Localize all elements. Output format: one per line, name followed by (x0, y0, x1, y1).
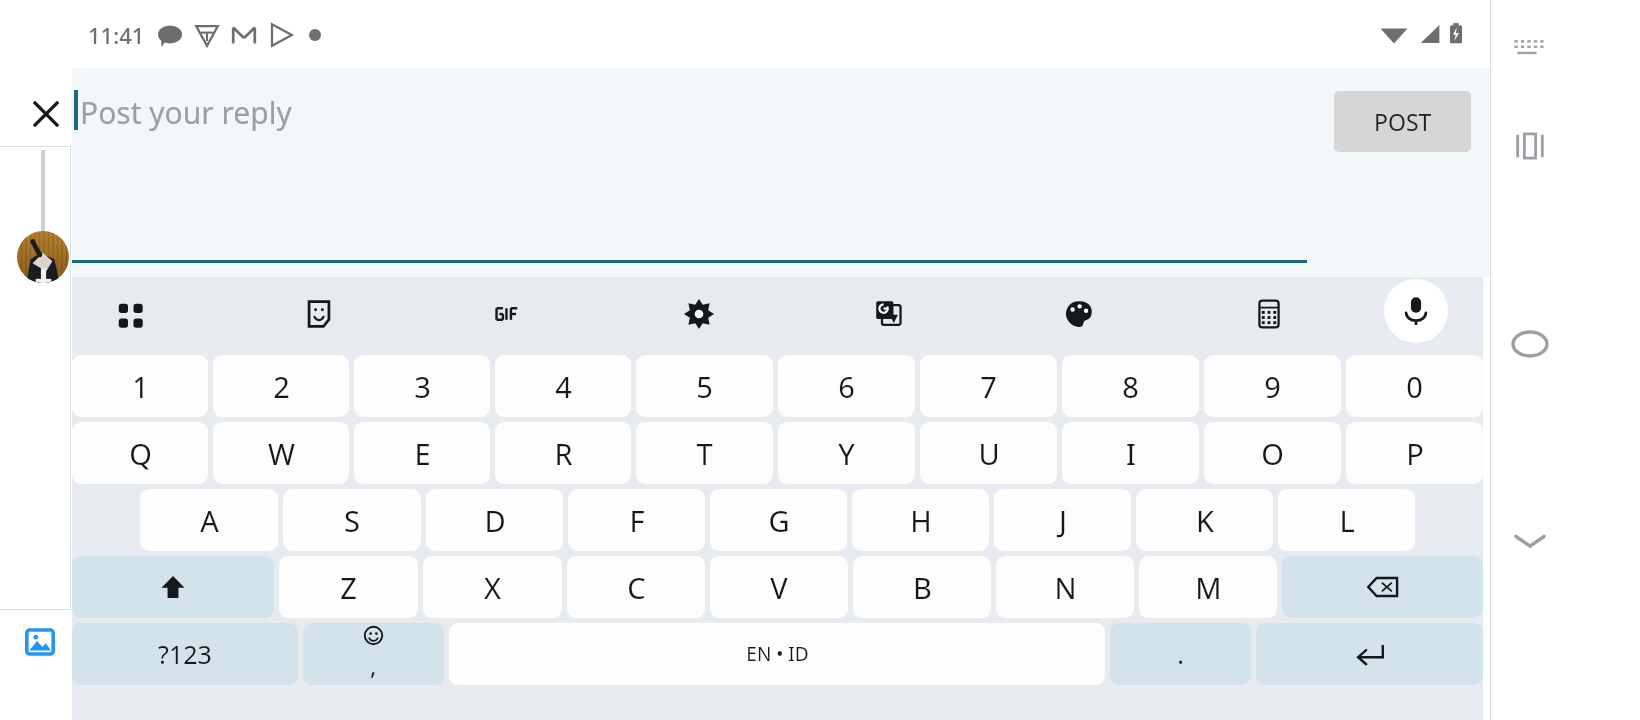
staticText: O (1261, 434, 1284, 473)
button[interactable]: Add image (16, 618, 64, 666)
button[interactable]: N (996, 556, 1134, 618)
staticText: J (1059, 501, 1067, 540)
button[interactable]: 0 (1346, 355, 1483, 417)
staticText: EN • ID (746, 641, 809, 667)
button[interactable]: Themes (1051, 286, 1107, 342)
button[interactable]: 9 (1204, 355, 1341, 417)
button[interactable]: F (568, 489, 705, 551)
button[interactable]: G (710, 489, 847, 551)
button[interactable]: W (213, 422, 349, 484)
button[interactable]: Clipboard (101, 286, 157, 342)
staticText: R (554, 434, 573, 473)
staticText: C (627, 568, 646, 607)
button[interactable]: E (354, 422, 490, 484)
button[interactable]: I (1062, 422, 1199, 484)
staticText: V (770, 568, 788, 607)
button[interactable]: . (1110, 623, 1251, 685)
staticText: 6 (838, 367, 855, 406)
staticText: Y (838, 434, 855, 473)
button[interactable]: R (495, 422, 631, 484)
button[interactable]: EN • ID (449, 623, 1105, 685)
button[interactable]: Y (778, 422, 915, 484)
staticText: H (910, 501, 932, 540)
button[interactable]: C (567, 556, 705, 618)
button[interactable]: M (1139, 556, 1277, 618)
button[interactable]: Enter (1256, 623, 1483, 685)
button[interactable]: O (1204, 422, 1341, 484)
staticText: Z (340, 568, 357, 607)
staticText: X (484, 568, 501, 607)
button[interactable]: POST (1334, 91, 1471, 152)
staticText: 4 (555, 367, 572, 406)
button[interactable]: 3 (354, 355, 490, 417)
button[interactable]: H (852, 489, 989, 551)
button[interactable]: Q (72, 422, 208, 484)
staticText: 9 (1264, 367, 1281, 406)
button[interactable]: A (140, 489, 278, 551)
staticText: B (913, 568, 932, 607)
staticText: , (370, 649, 377, 682)
button[interactable]: Number pad (1241, 286, 1297, 342)
staticText: T (696, 434, 713, 473)
button[interactable]: GIF (481, 286, 537, 342)
staticText: POST (1374, 106, 1432, 137)
button[interactable]: B (853, 556, 991, 618)
button[interactable]: K (1136, 489, 1273, 551)
button[interactable]: 2 (213, 355, 349, 417)
staticText: 2 (273, 367, 290, 406)
button[interactable]: Back (1502, 513, 1558, 569)
button[interactable]: 7 (920, 355, 1057, 417)
button[interactable]: Stickers (291, 286, 347, 342)
button[interactable]: J (994, 489, 1131, 551)
button[interactable]: Recent apps (1502, 118, 1558, 174)
staticText: 3 (414, 367, 431, 406)
staticText: 0 (1406, 367, 1423, 406)
staticText: D (484, 501, 506, 540)
button[interactable]: Shift (72, 556, 274, 618)
staticText: ?123 (158, 637, 212, 671)
button[interactable]: X (423, 556, 562, 618)
button[interactable]: 1 (72, 355, 208, 417)
button[interactable]: P (1346, 422, 1483, 484)
staticText: . (1177, 637, 1184, 671)
staticText: A (200, 501, 219, 540)
button[interactable]: Home (1502, 316, 1558, 372)
button[interactable]: 6 (778, 355, 915, 417)
button[interactable]: V (710, 556, 848, 618)
button[interactable]: Settings (671, 286, 727, 342)
staticText: P (1406, 434, 1424, 473)
staticText: I (1126, 434, 1136, 473)
button[interactable]: Close (22, 90, 70, 138)
button[interactable]: Backspace (1282, 556, 1483, 618)
button[interactable]: U (920, 422, 1057, 484)
staticText: W (268, 434, 295, 473)
button[interactable]: ?123 (72, 623, 298, 685)
button[interactable]: 5 (636, 355, 773, 417)
staticText: L (1339, 501, 1355, 540)
button[interactable]: L (1278, 489, 1415, 551)
button[interactable]: Voice input (1384, 279, 1448, 343)
button[interactable]: Profile picture (17, 231, 69, 283)
staticText: 11:41 (88, 20, 145, 50)
button[interactable]: D (426, 489, 563, 551)
staticText: 8 (1122, 367, 1139, 406)
button[interactable]: S (283, 489, 421, 551)
staticText: Post your reply (80, 92, 292, 133)
button[interactable]: Comma and emoji (303, 623, 444, 685)
staticText: Q (129, 434, 152, 473)
staticText: S (344, 501, 360, 540)
staticText: 5 (696, 367, 713, 406)
button[interactable]: 8 (1062, 355, 1199, 417)
button[interactable]: Z (279, 556, 418, 618)
staticText: U (978, 434, 1000, 473)
button[interactable]: 4 (495, 355, 631, 417)
staticText: 7 (980, 367, 997, 406)
button[interactable]: Translate (861, 286, 917, 342)
staticText: E (414, 434, 431, 473)
staticText: N (1054, 568, 1077, 607)
button[interactable]: T (636, 422, 773, 484)
staticText: 1 (132, 367, 149, 406)
staticText: K (1196, 501, 1214, 540)
staticText: G (768, 501, 790, 540)
staticText: M (1195, 568, 1222, 607)
